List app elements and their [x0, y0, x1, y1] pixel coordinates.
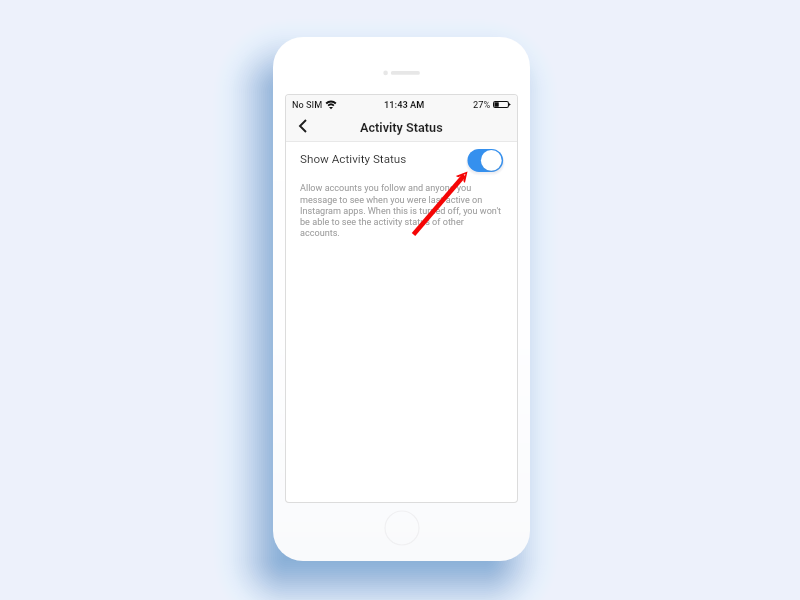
staticText: No SIM: [292, 99, 323, 110]
staticText: Allow accounts you follow and anyone you…: [300, 183, 505, 238]
staticText: Show Activity Status: [300, 152, 407, 166]
button[interactable]: Show Activity Status: [286, 142, 517, 179]
staticText: 27%: [473, 99, 491, 110]
button[interactable]: Show Activity Status toggle: [467, 149, 504, 173]
staticText: Activity Status: [360, 120, 443, 135]
staticText: 11:43 AM: [384, 99, 425, 110]
button[interactable]: Back: [286, 113, 320, 141]
